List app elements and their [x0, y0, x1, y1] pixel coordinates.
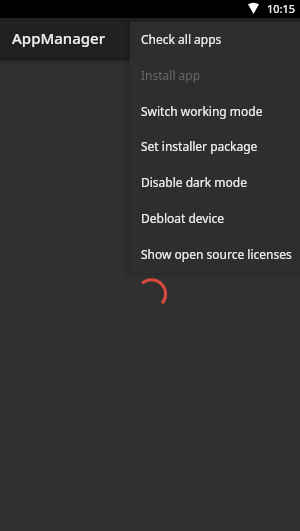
staticText: Switch working mode [141, 103, 263, 119]
staticText: Show open source licenses [141, 246, 292, 262]
staticText: Debloat device [141, 210, 225, 226]
staticText: 10:15 [267, 1, 296, 16]
button[interactable]: Switch working mode [130, 94, 300, 130]
other: Wi-Fi connected [248, 4, 259, 14]
button[interactable]: Check all apps [130, 22, 300, 58]
button[interactable]: Set installer package [130, 129, 300, 165]
button[interactable]: Disable dark mode [130, 165, 300, 201]
staticText: Install app [141, 67, 201, 83]
button[interactable]: Show open source licenses [130, 237, 300, 273]
staticText: AppManager [12, 28, 106, 48]
staticText: Disable dark mode [141, 174, 247, 190]
button[interactable]: Debloat device [130, 201, 300, 237]
staticText: Set installer package [141, 138, 258, 154]
other: Loading [134, 276, 170, 312]
staticText: Check all apps [141, 31, 222, 47]
button[interactable]: Install app [130, 58, 300, 94]
